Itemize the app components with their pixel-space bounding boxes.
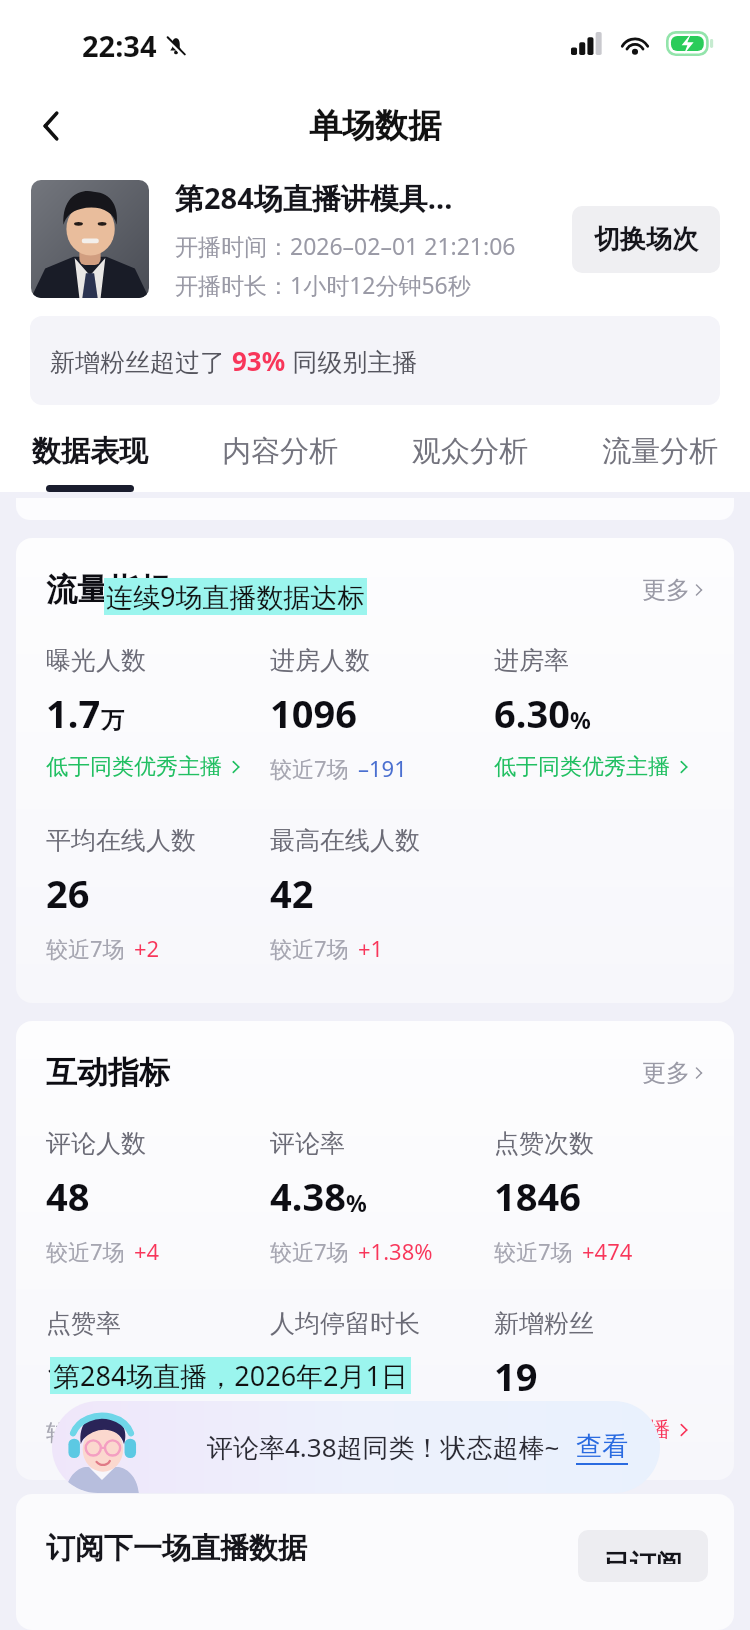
staticText: 42 [270,867,314,919]
staticText: 流量指标 [46,570,170,609]
staticText: 4.38 [270,1170,346,1222]
staticText: 新增粉丝 [494,1308,594,1339]
staticText: 19 [494,1350,538,1402]
staticText: 同级别主播 [286,344,418,378]
staticText: % [122,1367,143,1398]
button[interactable]: 切换场次 [572,206,720,273]
staticText: 更多 [642,1058,690,1088]
staticText: 进房人数 [270,645,370,676]
staticText: 最高在线人数 [270,825,420,856]
staticText: 1.09 [46,1350,122,1402]
staticText: 开播时间：2026–02–01 21:21:06 [175,230,516,261]
staticText: 万 [101,706,124,735]
staticText: 互动指标 [46,1053,170,1092]
staticText: +4 [134,1236,160,1266]
staticText: +1 [358,933,384,963]
button[interactable]: 更多 [642,575,708,605]
staticText: % [570,704,591,735]
staticText: +0.19分钟 [358,1416,459,1446]
staticText: 平均在线人数 [46,825,196,856]
staticText: 较近7场 [270,933,349,963]
staticText: 1.7 [46,687,101,739]
staticText: 较近7场 [46,1416,125,1446]
staticText: 第284场直播讲模具… [175,178,453,218]
staticText: 内容分析 [222,433,338,470]
button[interactable]: 更多 [642,1058,708,1088]
staticText: 较近7场 [46,1236,125,1266]
staticText: 开播时长：1小时12分钟56秒 [175,269,471,300]
staticText: +2 [134,933,160,963]
button[interactable]: 新增粉丝超过了 [30,316,720,405]
staticText: +0.09% [134,1416,209,1446]
staticText: 进房率 [494,645,569,676]
staticText: +1.38% [358,1236,433,1266]
staticText: 连续9场直播数据达标 [106,578,365,615]
staticText: 48 [46,1170,90,1222]
button[interactable]: 查看 [576,1430,628,1465]
button[interactable]: Back [22,96,82,156]
staticText: 较近7场 [46,933,125,963]
staticText: 观众分析 [412,433,528,470]
staticText: 低于同类优秀主播 [46,753,222,781]
staticText: 93% [232,343,286,378]
staticText: 较近7场 [270,1416,349,1446]
staticText: 第284场直播，2026年2月1日 [53,1357,408,1394]
staticText: 22:34 [82,26,157,65]
button[interactable]: 已订阅 [578,1530,708,1582]
staticText: 曝光人数 [46,645,146,676]
staticText: 较近7场 [270,1236,349,1266]
button[interactable]: 低于同类优秀主播 [46,753,244,781]
staticText: 查看 [576,1430,628,1463]
button[interactable]: 内容分析 [220,433,340,492]
staticText: 评论人数 [46,1128,146,1159]
staticText: 分钟 [346,1369,392,1398]
staticText: 高于同类优秀主播 [494,1416,670,1444]
staticText: 1096 [270,687,357,739]
staticText: 流量分析 [602,433,718,470]
staticText: 单场数据 [309,105,441,147]
staticText: 1.59 [270,1350,346,1402]
staticText: 新增粉丝超过了 [50,344,232,378]
staticText: –191 [358,753,407,783]
staticText: 数据表现 [32,433,148,470]
staticText: 1846 [494,1170,581,1222]
staticText: 评论率 [270,1128,345,1159]
staticText: 点赞率 [46,1308,121,1339]
staticText: 较近7场 [494,1236,573,1266]
staticText: 26 [46,867,90,919]
button[interactable]: 高于同类优秀主播 [494,1416,692,1444]
button[interactable]: 评论率4.38超同类！状态超棒~ [52,1401,660,1493]
staticText: 更多 [642,575,690,605]
staticText: 6.30 [494,687,570,739]
staticText: +474 [582,1236,633,1266]
button[interactable]: 低于同类优秀主播 [494,753,692,781]
staticText: 已订阅 [604,1548,682,1564]
button[interactable]: 观众分析 [410,433,530,492]
staticText: 人均停留时长 [270,1308,420,1339]
staticText: 低于同类优秀主播 [494,753,670,781]
button[interactable]: 数据表现 [30,433,150,492]
button[interactable]: 流量分析 [600,433,720,492]
staticText: % [346,1187,367,1218]
staticText: 较近7场 [270,753,349,783]
button[interactable]: Avatar [31,180,149,298]
staticText: 切换场次 [594,223,698,256]
staticText: 订阅下一场直播数据 [46,1530,307,1567]
staticText: 点赞次数 [494,1128,594,1159]
staticText: 评论率4.38超同类！状态超棒~ [207,1429,560,1465]
